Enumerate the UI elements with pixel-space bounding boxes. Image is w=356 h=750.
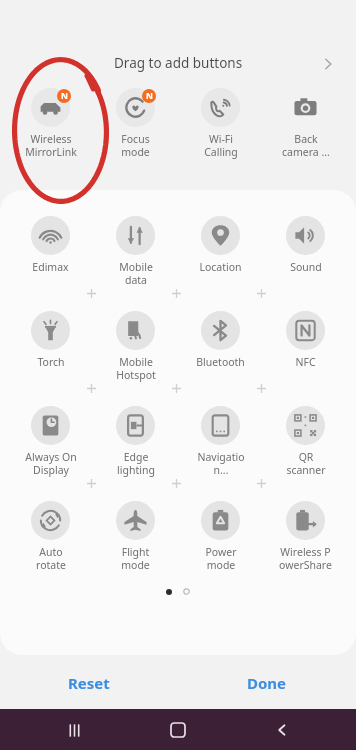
button[interactable]: Wi-Fi Calling (178, 86, 263, 161)
staticText: Drag to add buttons (114, 54, 243, 72)
button[interactable]: Torch (8, 309, 93, 371)
staticText: Wi-Fi Calling (204, 132, 238, 159)
button[interactable]: Back (262, 710, 302, 750)
staticText: Power mode (205, 545, 237, 572)
button[interactable]: More (314, 50, 342, 78)
staticText: Flight mode (121, 545, 150, 572)
staticText: Location (199, 260, 242, 274)
staticText: QR scanner (286, 450, 326, 477)
button[interactable]: Flight mode (93, 499, 178, 574)
staticText: Torch (37, 355, 65, 369)
button[interactable]: N (8, 86, 93, 161)
staticText: Edimax (32, 260, 69, 274)
button[interactable]: Done (178, 657, 356, 709)
staticText: Wireless MirrorLink (25, 132, 77, 159)
staticText: Sound (290, 260, 322, 274)
button[interactable]: Edimax (8, 214, 93, 276)
staticText: Wireless P owerShare (279, 545, 332, 572)
button[interactable]: Home (158, 710, 198, 750)
button[interactable]: QR scanner (263, 404, 348, 479)
button[interactable]: Sound (263, 214, 348, 276)
button[interactable]: Mobile data (93, 214, 178, 289)
button[interactable]: Location (178, 214, 263, 276)
button[interactable]: Always On Display (8, 404, 93, 479)
staticText: Back camera ... (282, 132, 330, 159)
staticText: Auto rotate (36, 545, 66, 572)
button[interactable]: Edge lighting (93, 404, 178, 479)
button[interactable]: Navigatio n... (178, 404, 263, 479)
button[interactable]: N (93, 86, 178, 161)
button[interactable]: Bluetooth (178, 309, 263, 371)
button[interactable]: Mobile Hotspot (93, 309, 178, 384)
staticText: Edge lighting (117, 450, 155, 477)
button[interactable]: NFC (263, 309, 348, 371)
staticText: Reset (68, 673, 110, 693)
staticText: Navigatio n... (197, 450, 245, 477)
staticText: Mobile data (119, 260, 153, 287)
staticText: Focus mode (121, 132, 150, 159)
staticText: N (146, 90, 153, 102)
staticText: Mobile Hotspot (116, 355, 156, 382)
button[interactable]: Power mode (178, 499, 263, 574)
staticText: Always On Display (25, 450, 77, 477)
button[interactable]: Back camera ... (263, 86, 348, 161)
staticText: NFC (295, 355, 316, 369)
staticText: Bluetooth (196, 355, 245, 369)
button[interactable]: Auto rotate (8, 499, 93, 574)
staticText: N (61, 90, 68, 102)
staticText: Done (247, 673, 287, 693)
button[interactable]: Wireless P owerShare (263, 499, 348, 574)
button[interactable]: Recents (54, 710, 94, 750)
button[interactable]: Reset (0, 657, 178, 709)
